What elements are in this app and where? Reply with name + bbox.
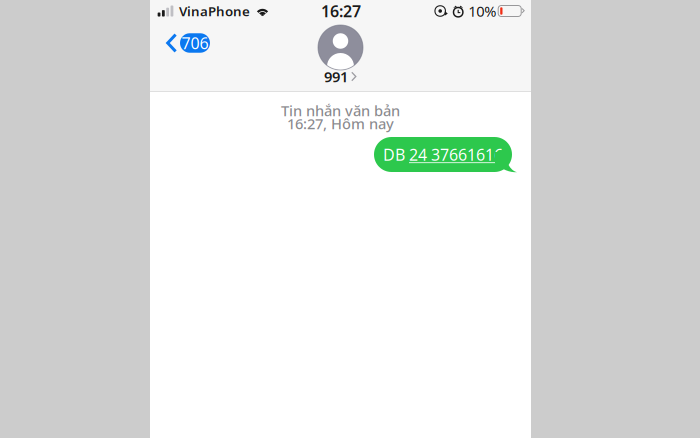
staticText: 10% — [468, 1, 496, 21]
staticText: Tin nhắn văn bản — [281, 101, 400, 120]
staticText: 991 — [324, 67, 348, 86]
button[interactable]: Back to 706 — [150, 27, 220, 59]
button[interactable]: Contact 991 details — [318, 22, 363, 92]
staticText: 706 — [181, 32, 208, 54]
staticText: DB 24 37661616 — [383, 144, 503, 165]
staticText: VinaPhone — [179, 2, 250, 20]
staticText: 16:27, Hôm nay — [287, 114, 394, 133]
staticText: 16:27 — [321, 0, 361, 22]
